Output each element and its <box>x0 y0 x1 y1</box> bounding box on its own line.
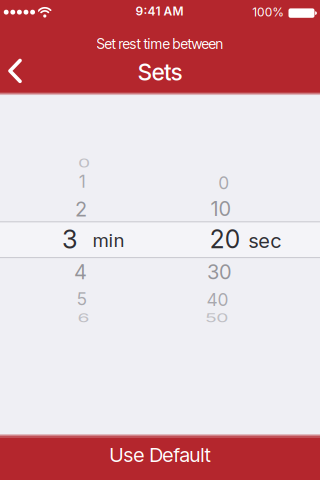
staticText: 5 <box>76 288 87 309</box>
staticText: 4 <box>74 260 87 284</box>
staticText: 0 <box>218 172 229 193</box>
staticText: 1 <box>79 171 86 192</box>
staticText: Set rest time between <box>96 35 223 52</box>
staticText: Use Default <box>109 443 210 467</box>
staticText: Sets <box>138 59 182 86</box>
staticText: 0 <box>78 151 90 175</box>
staticText: 30 <box>207 260 232 284</box>
staticText: min <box>93 229 125 251</box>
button[interactable]: Back <box>0 50 44 91</box>
staticText: 100% <box>252 5 284 19</box>
staticText: 9:41 AM <box>135 4 183 18</box>
button[interactable]: Use Default <box>0 437 320 480</box>
staticText: 10 <box>211 197 232 221</box>
staticText: 50 <box>205 306 228 330</box>
staticText: 40 <box>207 289 229 310</box>
staticText: 6 <box>78 306 90 330</box>
staticText: 3 <box>62 224 78 255</box>
staticText: sec <box>248 228 281 253</box>
staticText: 20 <box>210 224 240 254</box>
staticText: 2 <box>75 197 87 221</box>
